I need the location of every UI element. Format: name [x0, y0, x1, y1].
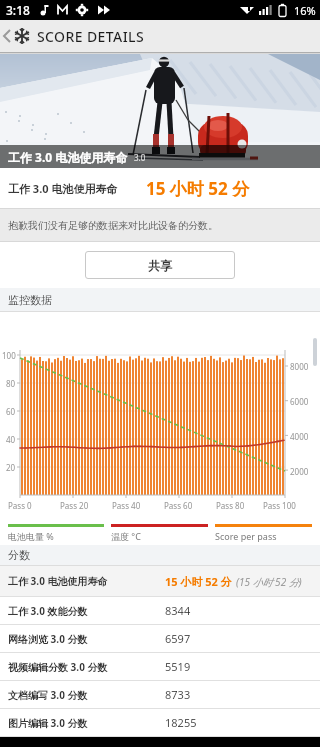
staticText: 共享 [148, 258, 172, 273]
staticText: 8000 [290, 361, 309, 372]
staticText: Pass 0 [8, 500, 32, 511]
staticText: 6597 [165, 631, 191, 646]
button[interactable]: 图片编辑 3.0 分数 [0, 709, 320, 736]
staticText: 100 [2, 350, 16, 361]
staticText: 60 [6, 406, 16, 417]
staticText: Pass 80 [216, 500, 245, 511]
staticText: Pass 40 [112, 500, 141, 511]
staticText: 4000 [290, 431, 309, 442]
staticText: 文档编写 3.0 分数 [8, 688, 88, 702]
staticText: 监控数据 [8, 293, 52, 307]
staticText: 工作 3.0 电池使用寿命 [8, 574, 108, 588]
staticText: Pass 100 [263, 500, 296, 511]
staticText: 分数 [8, 548, 30, 562]
staticText: Score per pass [215, 530, 277, 542]
staticText: 电池电量 % [8, 530, 54, 542]
staticText: 18255 [165, 715, 197, 730]
staticText: 16% [294, 3, 316, 18]
staticText: (15 小时 52 分) [236, 575, 302, 589]
staticText: 视频编辑分数 3.0 分数 [8, 660, 108, 674]
staticText: 8733 [165, 687, 191, 702]
staticText: 15 小时 52 分 [165, 574, 232, 589]
staticText: Pass 20 [60, 500, 89, 511]
staticText: 8344 [165, 603, 191, 618]
staticText: 40 [6, 434, 16, 445]
staticText: 3:18 [6, 2, 30, 18]
staticText: 5519 [165, 659, 191, 674]
staticText: 3.0 [134, 152, 146, 163]
staticText: 抱歉我们没有足够的数据来对比此设备的分数。 [8, 219, 218, 232]
staticText: 工作 3.0 电池使用寿命 [8, 181, 118, 196]
staticText: 温度 °C [111, 530, 141, 542]
staticText: 2000 [290, 466, 309, 477]
button[interactable]: 文档编写 3.0 分数 [0, 681, 320, 708]
button[interactable]: 视频编辑分数 3.0 分数 [0, 653, 320, 680]
button[interactable]: 工作 3.0 效能分数 [0, 597, 320, 624]
staticText: 网络浏览 3.0 分数 [8, 632, 88, 646]
staticText: 20 [6, 462, 16, 473]
staticText: 15 小时 52 分 [146, 177, 250, 200]
staticText: 工作 3.0 效能分数 [8, 604, 88, 618]
button[interactable]: 工作 3.0 电池使用寿命 [0, 566, 320, 596]
button[interactable]: 共享 [85, 251, 235, 279]
button[interactable] [2, 29, 12, 43]
staticText: SCORE DETAILS [37, 27, 144, 46]
staticText: 6000 [290, 396, 309, 407]
staticText: 工作 3.0 电池使用寿命 [8, 149, 128, 165]
staticText: 图片编辑 3.0 分数 [8, 716, 88, 730]
staticText: Pass 60 [164, 500, 193, 511]
button[interactable]: 网络浏览 3.0 分数 [0, 625, 320, 652]
staticText: 80 [6, 378, 16, 389]
